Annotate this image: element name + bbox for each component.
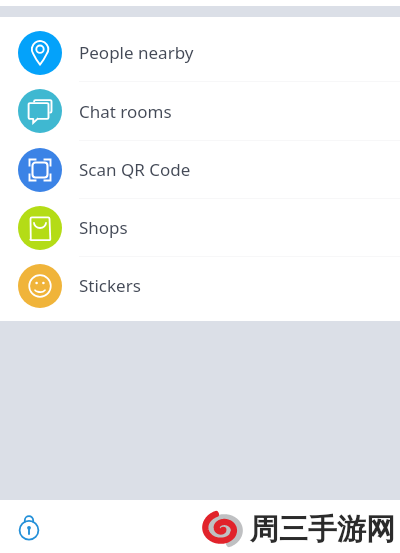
staticText: People nearby <box>79 41 194 64</box>
staticText: Scan QR Code <box>79 158 191 181</box>
staticText: Shops <box>79 216 128 239</box>
staticText: Chat rooms <box>79 100 172 123</box>
button[interactable]: Stickers <box>0 256 400 315</box>
button[interactable]: Lock <box>13 511 45 543</box>
button[interactable]: Chat rooms <box>0 81 400 141</box>
button[interactable]: Scan QR Code <box>0 140 400 199</box>
staticText: Stickers <box>79 274 141 297</box>
staticText: 周三手游网 <box>250 511 395 548</box>
button[interactable]: Shops <box>0 198 400 257</box>
button[interactable]: People nearby <box>0 23 400 82</box>
